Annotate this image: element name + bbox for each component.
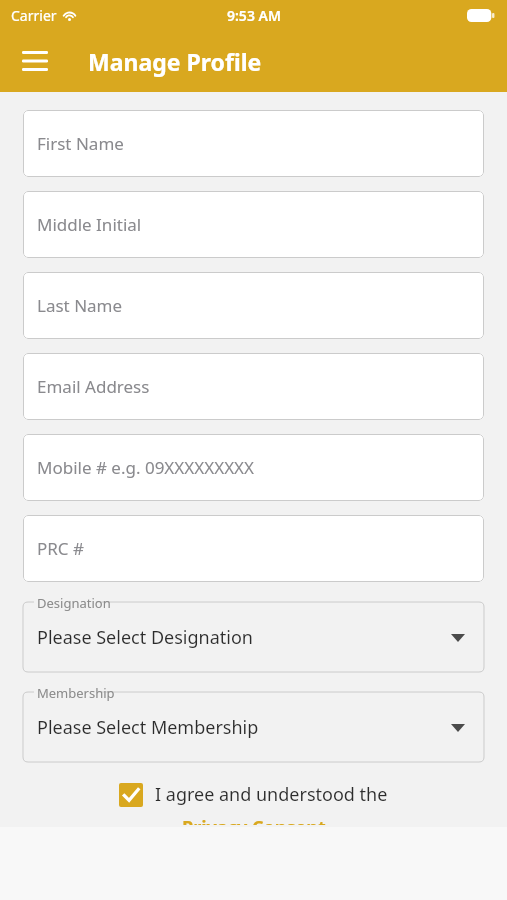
staticText: 9:53 AM xyxy=(227,6,281,25)
staticText: I agree and understood the xyxy=(155,782,388,807)
staticText: Last Name xyxy=(37,294,123,317)
button[interactable]: First Name xyxy=(23,110,484,177)
staticText: Privacy Consent xyxy=(182,815,326,825)
button[interactable]: Membership xyxy=(23,683,484,762)
staticText: PRC # xyxy=(37,537,85,560)
button[interactable]: Mobile # e.g. 09XXXXXXXXX xyxy=(23,434,484,501)
staticText: Please Select Membership xyxy=(37,715,259,740)
staticText: Please Select Designation xyxy=(37,625,253,650)
staticText: Middle Initial xyxy=(37,213,142,236)
staticText: First Name xyxy=(37,132,124,155)
button[interactable]: Privacy Consent xyxy=(172,813,336,827)
button[interactable]: Middle Initial xyxy=(23,191,484,258)
button[interactable]: Open navigation menu xyxy=(13,39,57,83)
staticText: Carrier xyxy=(11,6,57,25)
button[interactable]: Email Address xyxy=(23,353,484,420)
staticText: Email Address xyxy=(37,375,150,398)
staticText: Manage Profile xyxy=(88,46,262,77)
staticText: Mobile # e.g. 09XXXXXXXXX xyxy=(37,456,255,479)
staticText: Designation xyxy=(37,594,111,612)
button[interactable]: PRC # xyxy=(23,515,484,582)
staticText: Membership xyxy=(37,684,115,702)
button[interactable]: Last Name xyxy=(23,272,484,339)
button[interactable]: Designation xyxy=(23,593,484,672)
button[interactable]: I agree and understood the xyxy=(111,779,396,810)
